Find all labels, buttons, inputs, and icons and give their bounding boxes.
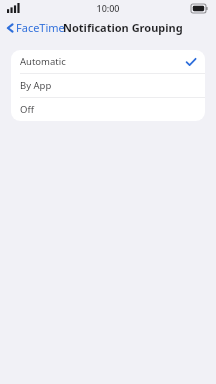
staticText: Off <box>20 103 34 116</box>
button[interactable]: Off <box>11 98 205 121</box>
staticText: FaceTime <box>16 20 65 35</box>
button[interactable]: Automatic <box>11 50 205 73</box>
button[interactable]: By App <box>11 74 205 97</box>
staticText: 10:00 <box>96 2 120 14</box>
staticText: By App <box>20 79 52 92</box>
other: Back <box>7 23 13 33</box>
button[interactable]: Back <box>0 17 71 38</box>
staticText: Automatic <box>20 55 66 68</box>
staticText: Notification Grouping <box>63 20 183 35</box>
